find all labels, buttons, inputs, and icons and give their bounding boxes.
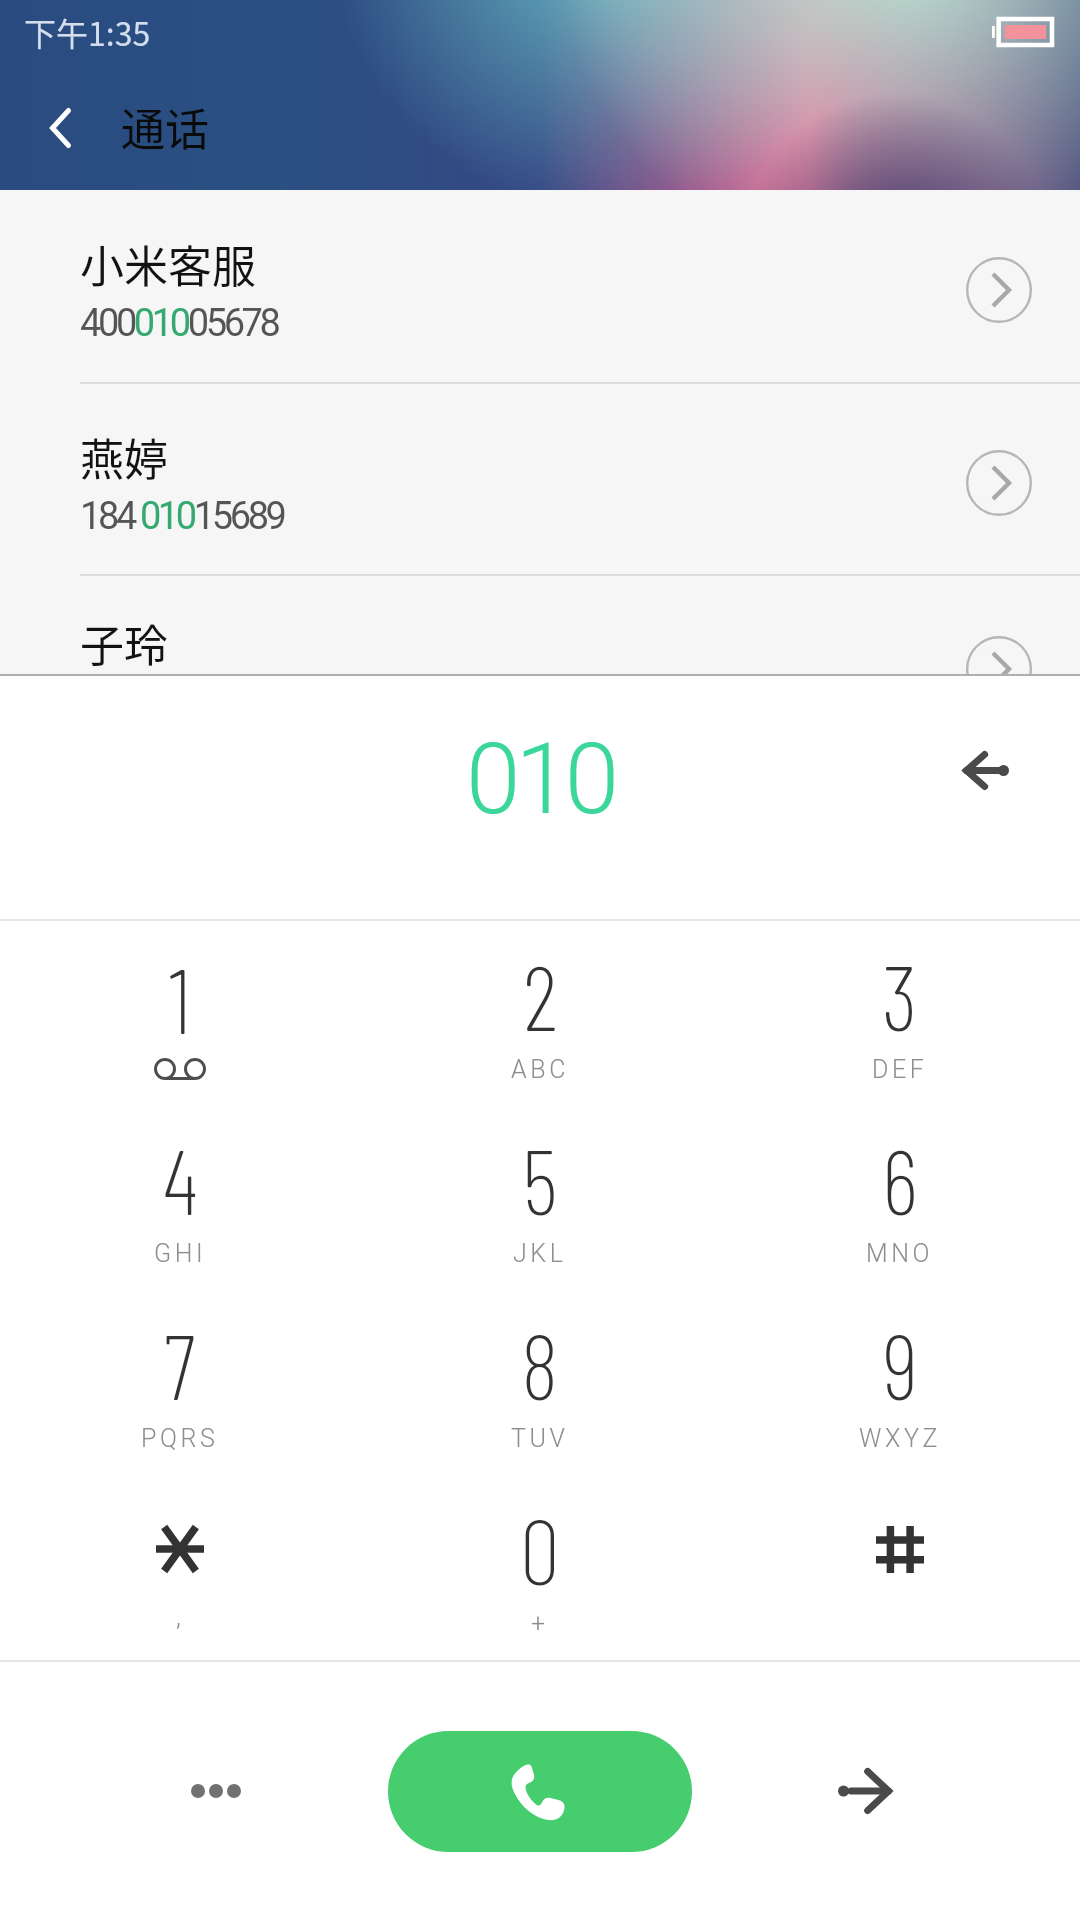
staticText: 184 01015689 — [80, 494, 284, 539]
button[interactable]: More options — [0, 1662, 388, 1920]
staticText: 2 — [523, 941, 558, 1049]
staticText: , — [176, 1602, 185, 1631]
staticText: 下午1:35 — [24, 9, 151, 55]
staticText: 5 — [522, 1125, 558, 1233]
button[interactable]: 8 — [360, 1290, 720, 1475]
button[interactable]: 4 — [0, 1105, 360, 1290]
button[interactable]: 1 — [0, 921, 360, 1105]
button[interactable]: 0 — [360, 1475, 720, 1660]
button[interactable]: Back — [18, 85, 103, 170]
staticText: 小米客服 — [80, 232, 256, 296]
button[interactable]: Contact details — [966, 636, 1032, 676]
staticText: + — [531, 1609, 549, 1638]
staticText: TUV — [511, 1424, 569, 1453]
button[interactable]: , — [0, 1475, 360, 1660]
staticText: MNO — [866, 1239, 934, 1268]
button[interactable]: Next — [692, 1662, 1080, 1920]
staticText: PQRS — [141, 1424, 219, 1453]
staticText: 40001005678 — [80, 301, 278, 346]
staticText: GHI — [154, 1239, 207, 1268]
button[interactable]: Contact details — [966, 257, 1032, 323]
staticText: JKL — [513, 1239, 567, 1268]
staticText: 8 — [521, 1310, 559, 1418]
button[interactable] — [720, 1475, 1080, 1660]
button[interactable]: 5 — [360, 1105, 720, 1290]
staticText: 010 — [466, 722, 615, 837]
staticText: 0 — [520, 1495, 560, 1603]
button[interactable]: 3 — [720, 921, 1080, 1105]
button[interactable]: 2 — [360, 921, 720, 1105]
staticText: 1 — [169, 944, 191, 1052]
button[interactable]: 子玲 — [0, 570, 1080, 676]
staticText: 7 — [164, 1310, 196, 1418]
button[interactable]: 9 — [720, 1290, 1080, 1475]
staticText: DEF — [872, 1055, 928, 1084]
button[interactable]: 小米客服 — [0, 190, 1080, 382]
staticText: 6 — [882, 1125, 918, 1233]
staticText: WXYZ — [859, 1424, 942, 1453]
staticText: 4 — [163, 1125, 198, 1233]
button[interactable]: 6 — [720, 1105, 1080, 1290]
staticText: 子玲 — [80, 611, 168, 675]
button[interactable]: Contact details — [966, 450, 1032, 516]
staticText: 燕婷 — [80, 425, 168, 489]
staticText: 9 — [883, 1310, 919, 1418]
staticText: ABC — [511, 1055, 569, 1084]
button[interactable]: 燕婷 — [0, 384, 1080, 574]
button[interactable]: 7 — [0, 1290, 360, 1475]
button[interactable]: Call — [388, 1731, 692, 1852]
staticText: 3 — [882, 941, 918, 1049]
staticText: 通话 — [121, 95, 209, 159]
button[interactable]: Backspace — [938, 722, 1034, 818]
